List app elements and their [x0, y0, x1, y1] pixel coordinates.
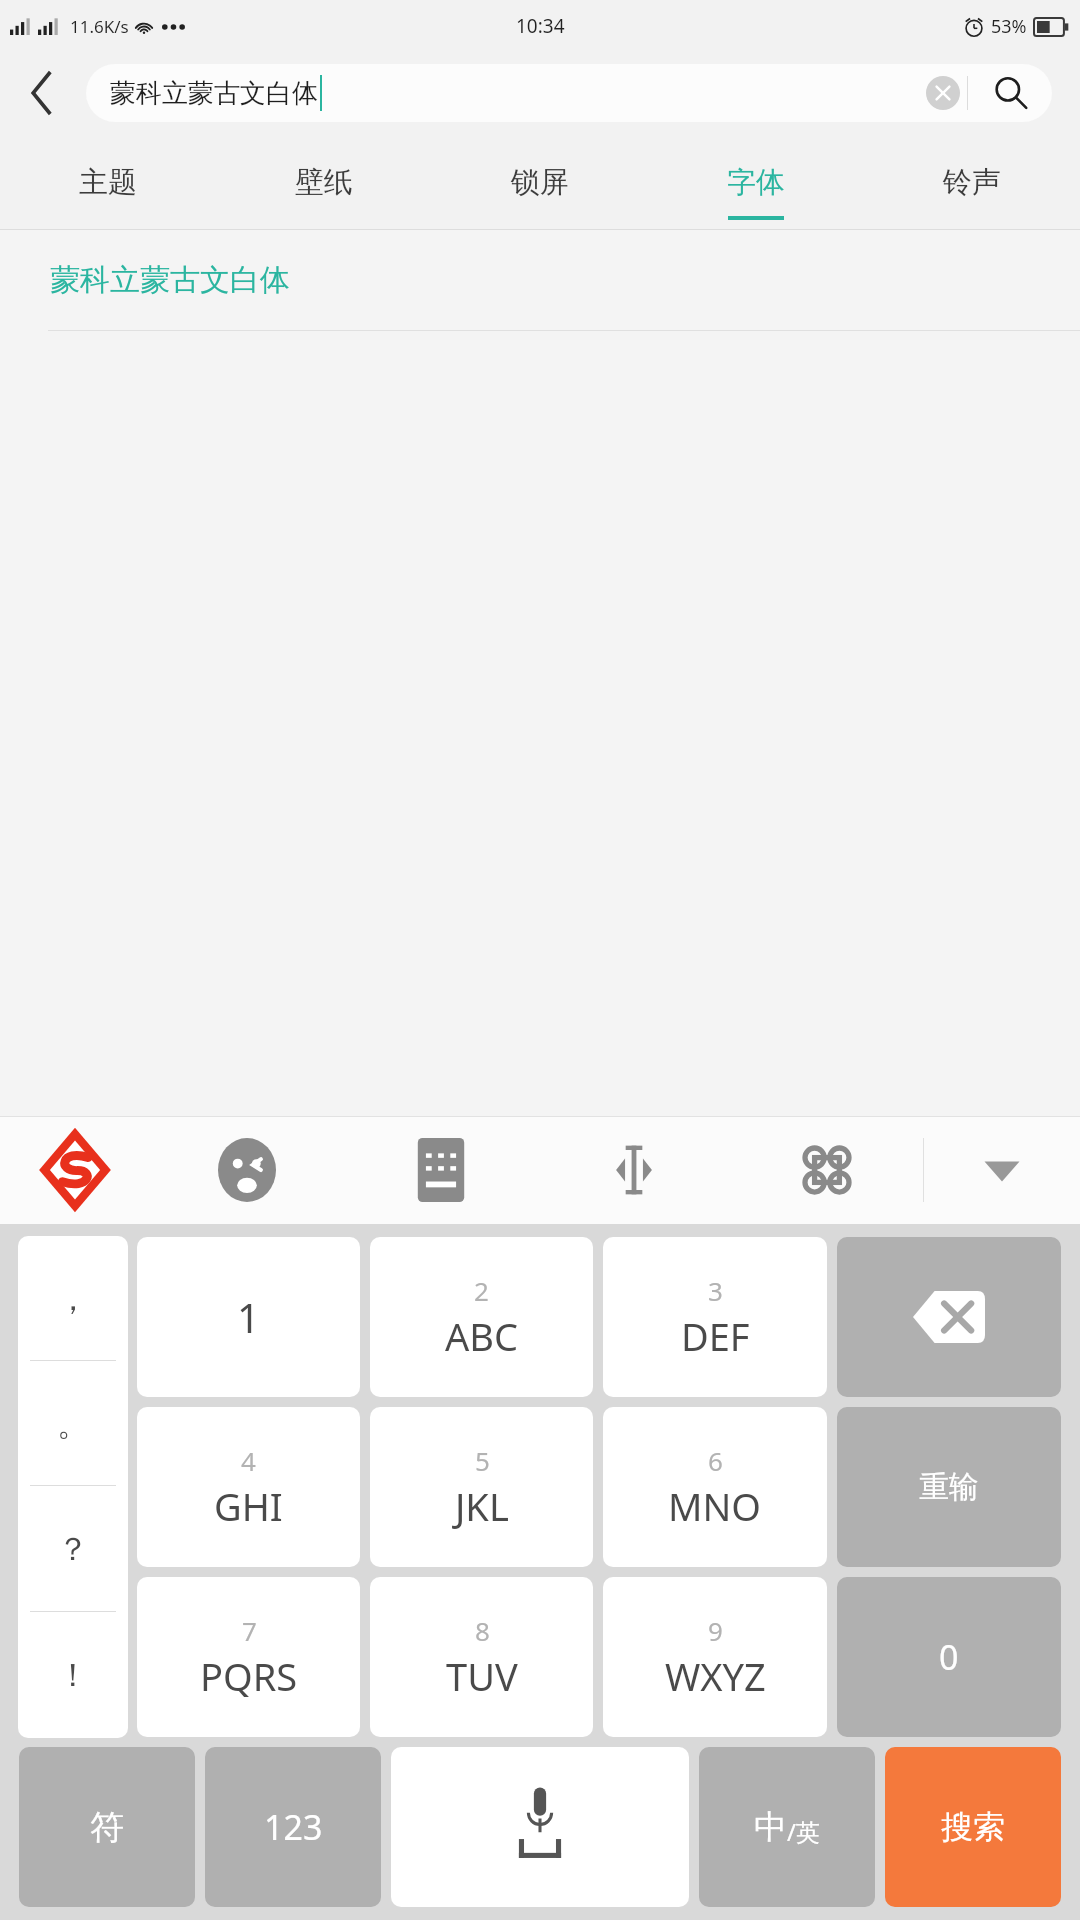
staticText: 6 [708, 1443, 723, 1478]
button[interactable]: Emoji [150, 1116, 344, 1224]
staticText: WXYZ [665, 1650, 766, 1702]
button[interactable]: 123 [205, 1747, 381, 1907]
button[interactable]: 字体 [648, 134, 864, 230]
button[interactable]: Clear [919, 69, 967, 117]
button[interactable]: Search [968, 64, 1052, 122]
button[interactable]: 主题 [0, 134, 216, 230]
staticText: 11.6K/s [70, 15, 129, 38]
button[interactable]: 壁纸 [216, 134, 432, 230]
staticText: 铃声 [943, 164, 1001, 201]
staticText: 9 [708, 1613, 723, 1648]
button[interactable]: ！ [18, 1612, 128, 1738]
button[interactable]: 2 [370, 1237, 593, 1397]
button[interactable]: Space, voice input [391, 1747, 689, 1907]
button[interactable]: 5 [370, 1407, 593, 1567]
staticText: ABC [445, 1310, 518, 1362]
staticText: 蒙科立蒙古文白体 [50, 261, 290, 299]
staticText: 字体 [727, 164, 785, 201]
button[interactable]: Hide keyboard [924, 1116, 1080, 1224]
staticText: 中 [754, 1806, 787, 1848]
button[interactable]: 。 [18, 1361, 128, 1486]
staticText: DEF [681, 1310, 750, 1362]
staticText: 符 [90, 1806, 124, 1849]
button[interactable]: 0 [837, 1577, 1061, 1737]
staticText: 蒙科立蒙古文白体 [110, 77, 318, 110]
button[interactable]: 重输 [837, 1407, 1061, 1567]
button[interactable]: 中 [699, 1747, 875, 1907]
staticText: 5 [475, 1443, 490, 1478]
button[interactable]: Back [0, 52, 86, 134]
staticText: 4 [241, 1443, 256, 1478]
staticText: 搜索 [941, 1807, 1005, 1847]
button[interactable]: 6 [603, 1407, 827, 1567]
button[interactable]: 1 [137, 1237, 360, 1397]
staticText: GHI [214, 1480, 283, 1532]
button[interactable]: 符 [19, 1747, 195, 1907]
staticText: PQRS [200, 1650, 298, 1702]
staticText: /英 [787, 1815, 820, 1848]
staticText: ！ [57, 1655, 89, 1695]
button[interactable]: ？ [18, 1486, 128, 1612]
staticText: 7 [242, 1613, 257, 1648]
staticText: 锁屏 [511, 164, 569, 201]
staticText: JKL [455, 1480, 509, 1532]
button[interactable]: 3 [603, 1237, 827, 1397]
button[interactable]: 铃声 [864, 134, 1080, 230]
staticText: 1 [237, 1290, 260, 1344]
button[interactable]: Settings [730, 1116, 923, 1224]
button[interactable]: Backspace [837, 1237, 1061, 1397]
button[interactable]: Move cursor [537, 1116, 730, 1224]
button[interactable]: 蒙科立蒙古文白体 [86, 64, 1052, 122]
button[interactable]: 蒙科立蒙古文白体 [0, 230, 1080, 330]
staticText: 3 [708, 1273, 723, 1308]
button[interactable]: 7 [137, 1577, 360, 1737]
staticText: 123 [264, 1804, 323, 1850]
staticText: ？ [57, 1529, 89, 1569]
staticText: 重输 [919, 1468, 979, 1506]
staticText: 53% [991, 14, 1027, 39]
staticText: 10:34 [516, 13, 565, 39]
staticText: 8 [475, 1613, 490, 1648]
staticText: 。 [57, 1404, 89, 1444]
button[interactable]: Keyboard layout [344, 1116, 537, 1224]
staticText: TUV [446, 1650, 518, 1702]
button[interactable]: 4 [137, 1407, 360, 1567]
staticText: 主题 [79, 164, 137, 201]
staticText: 壁纸 [295, 164, 353, 201]
staticText: ， [57, 1279, 89, 1319]
staticText: MNO [668, 1480, 762, 1532]
button[interactable]: Sogou [0, 1116, 150, 1224]
staticText: 2 [474, 1273, 489, 1308]
staticText: 0 [939, 1634, 959, 1680]
button[interactable]: ， [18, 1236, 128, 1361]
button[interactable]: 8 [370, 1577, 593, 1737]
button[interactable]: 9 [603, 1577, 827, 1737]
button[interactable]: 搜索 [885, 1747, 1061, 1907]
button[interactable]: 锁屏 [432, 134, 648, 230]
